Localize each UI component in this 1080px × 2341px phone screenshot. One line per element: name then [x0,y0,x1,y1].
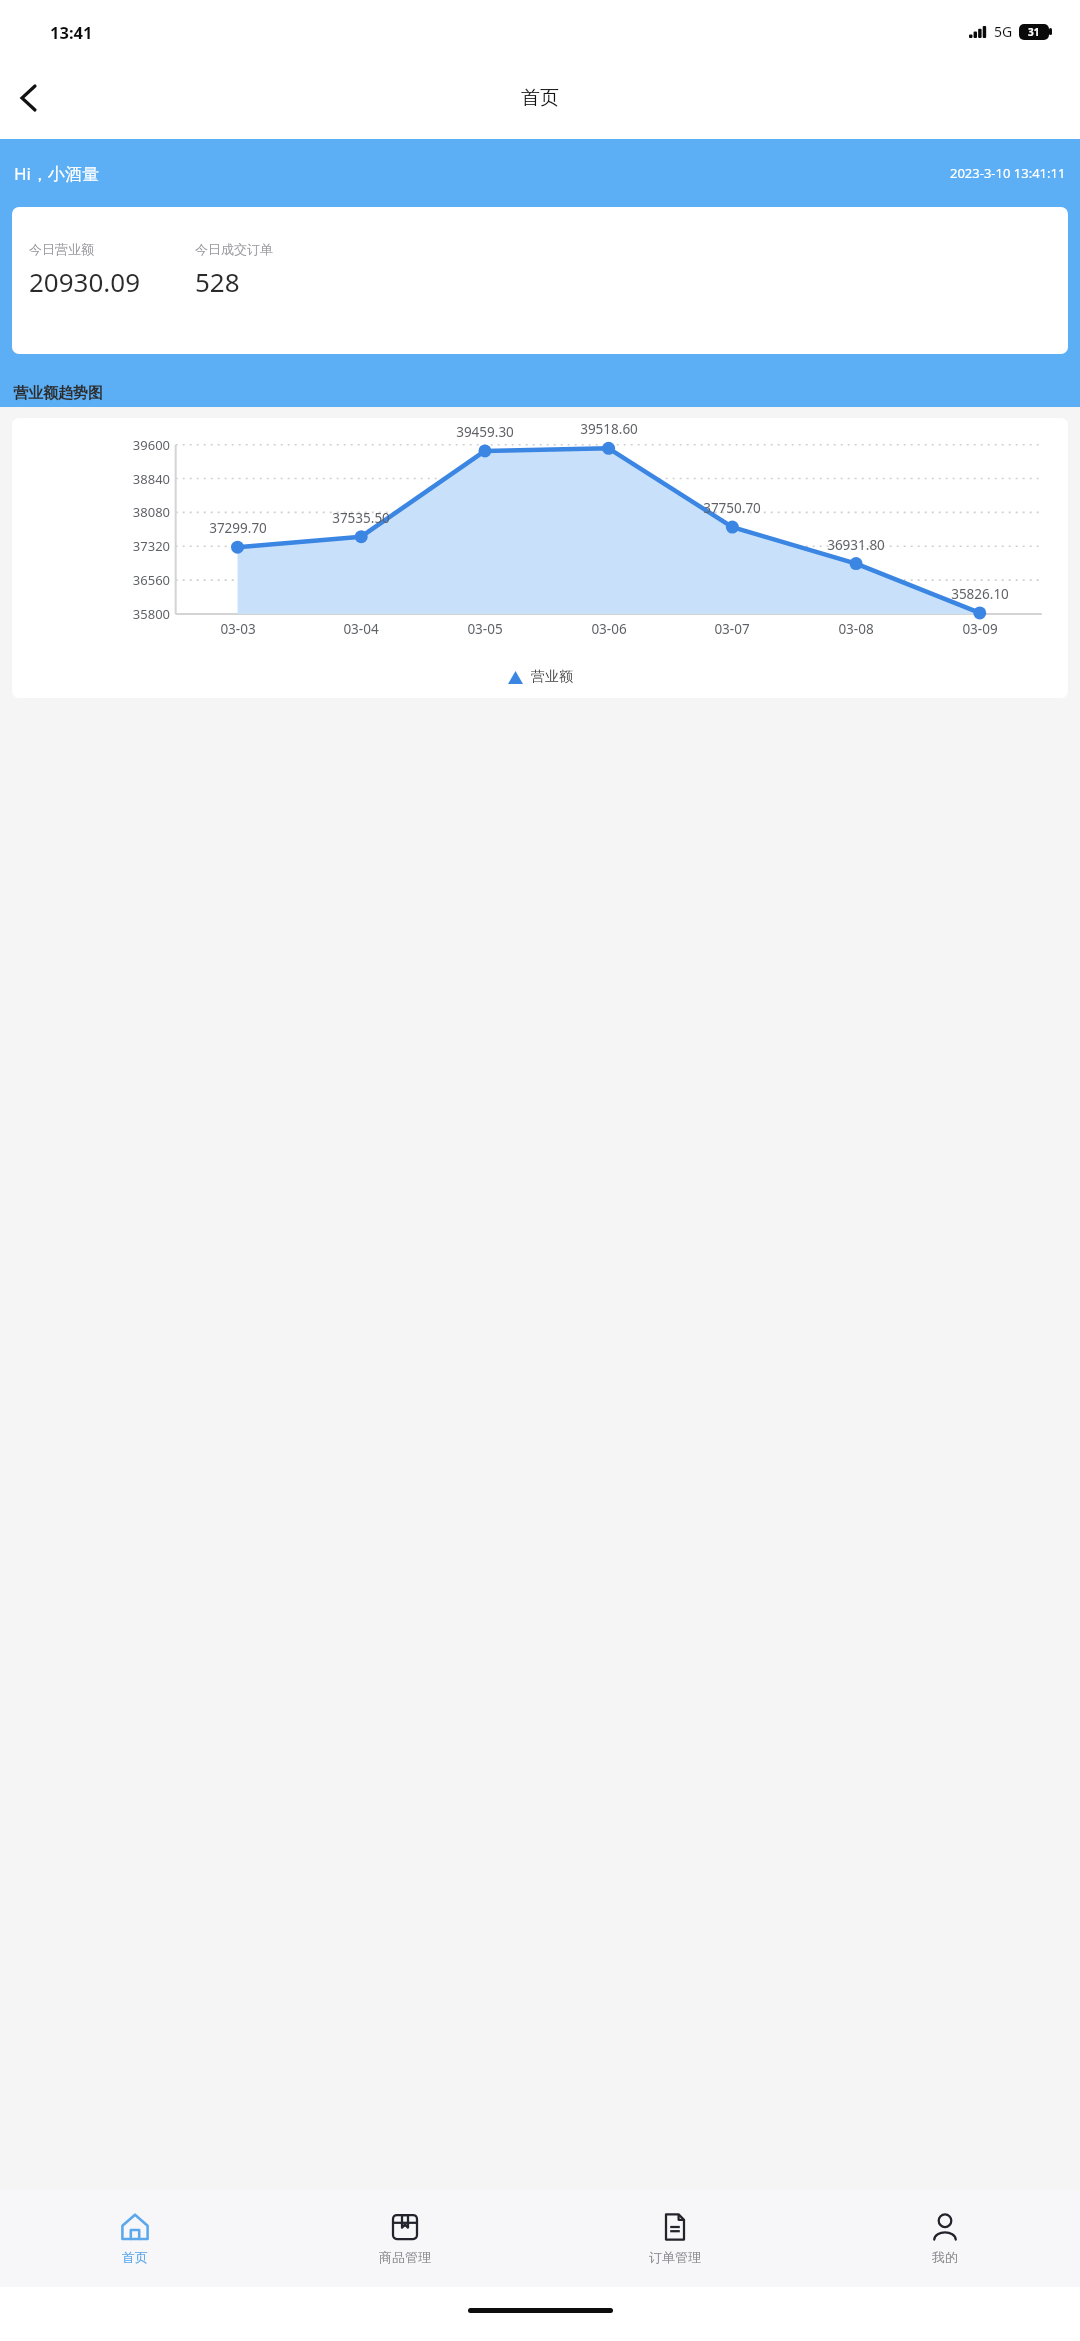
button[interactable]: 我的 [810,2190,1080,2287]
button[interactable]: 今日营业额 [12,207,1068,354]
staticText: 03-08 [823,620,889,638]
staticText: 528 [195,264,240,299]
staticText: 03-04 [328,620,394,638]
staticText: 38080 [110,503,170,521]
staticText: 39459.30 [445,423,525,441]
staticText: 20930.09 [29,264,141,299]
staticText: 36560 [110,571,170,589]
staticText: 03-03 [205,620,271,638]
staticText: 39600 [110,436,170,454]
staticText: 2023-3-10 13:41:11 [950,164,1066,182]
staticText: 37750.70 [692,499,772,517]
button[interactable]: 首页 [0,2190,270,2287]
staticText: 今日营业额 [29,241,94,257]
staticText: 03-05 [452,620,518,638]
button[interactable]: 商品管理 [270,2190,540,2287]
staticText: 5G [994,22,1013,41]
staticText: 03-07 [699,620,765,638]
staticText: 03-06 [576,620,642,638]
staticText: 订单管理 [649,2249,701,2265]
staticText: 31 [1028,25,1040,39]
button[interactable]: Back [0,70,56,126]
staticText: 营业额趋势图 [13,384,103,403]
staticText: 37535.50 [321,509,401,527]
staticText: 商品管理 [379,2249,431,2265]
staticText: 35826.10 [940,585,1020,603]
staticText: 我的 [932,2249,958,2265]
staticText: 35800 [110,605,170,623]
staticText: 13:41 [50,21,93,43]
button[interactable]: 订单管理 [540,2190,810,2287]
staticText: 37299.70 [198,519,278,537]
staticText: 36931.80 [816,536,896,554]
staticText: Hi，小酒量 [14,162,99,185]
staticText: 39518.60 [569,420,649,438]
staticText: 03-09 [947,620,1013,638]
staticText: 首页 [122,2249,148,2265]
staticText: 营业额 [531,668,573,686]
button[interactable]: 39600 [12,418,1068,698]
staticText: 今日成交订单 [195,241,273,257]
staticText: 37320 [110,537,170,555]
staticText: 38840 [110,470,170,488]
staticText: 首页 [521,86,559,110]
